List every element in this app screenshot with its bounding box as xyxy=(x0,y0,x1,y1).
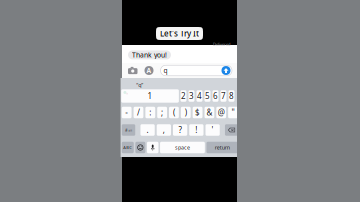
button[interactable]: ( xyxy=(169,107,179,118)
button[interactable]: , xyxy=(157,124,171,136)
staticText: Thank you! xyxy=(132,50,167,59)
button[interactable]: Let's Try It xyxy=(156,27,203,40)
button[interactable]: 6 xyxy=(212,90,218,102)
button[interactable]: Dictate xyxy=(147,142,158,153)
button[interactable]: - xyxy=(122,107,131,118)
button[interactable]: 5 xyxy=(204,90,210,102)
staticText: q xyxy=(163,66,167,75)
staticText: $ xyxy=(195,107,200,118)
button[interactable]: ABC xyxy=(122,142,134,153)
staticText: space xyxy=(175,144,190,151)
button[interactable]: @ xyxy=(216,107,226,118)
staticText: / xyxy=(137,107,140,118)
button[interactable]: " xyxy=(228,107,238,118)
button[interactable]: . xyxy=(140,124,155,136)
staticText: . xyxy=(147,125,149,135)
button[interactable]: space xyxy=(160,142,205,153)
staticText: ? xyxy=(179,125,182,135)
staticText: 8 xyxy=(229,91,234,101)
button[interactable]: 2 xyxy=(180,90,186,102)
button[interactable]: ' xyxy=(205,124,220,136)
staticText: A xyxy=(146,66,151,75)
staticText: ' xyxy=(212,125,214,135)
button[interactable]: & xyxy=(204,107,214,118)
staticText: Let's Try It xyxy=(160,28,199,39)
staticText: “q” xyxy=(136,81,143,89)
button[interactable]: 8 xyxy=(228,90,234,102)
staticText: 4 xyxy=(197,91,202,101)
staticText: 3 xyxy=(189,91,194,101)
button[interactable]: 7 xyxy=(220,90,226,102)
staticText: ; xyxy=(161,107,163,118)
staticText: return xyxy=(215,144,230,151)
button[interactable]: Delete xyxy=(225,124,238,136)
button[interactable]: $ xyxy=(193,107,202,118)
button[interactable]: Camera xyxy=(128,66,137,75)
button[interactable]: ; xyxy=(157,107,167,118)
button[interactable]: 1 xyxy=(121,89,179,103)
staticText: ( xyxy=(173,107,175,118)
button[interactable]: ) xyxy=(181,107,191,118)
button[interactable]: : xyxy=(145,107,155,118)
staticText: & xyxy=(206,107,212,118)
button[interactable]: Apps xyxy=(144,66,153,75)
staticText: 2 xyxy=(181,91,186,101)
button[interactable]: Send xyxy=(221,66,230,75)
staticText: @ xyxy=(218,107,225,118)
staticText: ABC xyxy=(123,145,132,150)
button[interactable]: return xyxy=(206,142,238,153)
staticText: : xyxy=(149,107,151,118)
staticText: #+= xyxy=(125,127,132,133)
staticText: ) xyxy=(185,107,187,118)
staticText: ! xyxy=(195,125,197,135)
staticText: 7 xyxy=(221,91,226,101)
button[interactable]: ! xyxy=(189,124,203,136)
staticText: " xyxy=(231,107,234,118)
staticText: 5 xyxy=(205,91,210,101)
button[interactable]: / xyxy=(134,107,143,118)
button[interactable]: Emoji xyxy=(135,142,145,153)
button[interactable]: #+= xyxy=(122,124,135,136)
staticText: - xyxy=(125,107,128,118)
staticText: 6 xyxy=(213,91,218,101)
staticText: , xyxy=(163,125,165,135)
button[interactable]: 3 xyxy=(188,90,194,102)
staticText: Delivered xyxy=(213,42,230,47)
button[interactable]: ? xyxy=(173,124,187,136)
button[interactable]: 4 xyxy=(196,90,202,102)
staticText: 1 xyxy=(148,91,153,101)
